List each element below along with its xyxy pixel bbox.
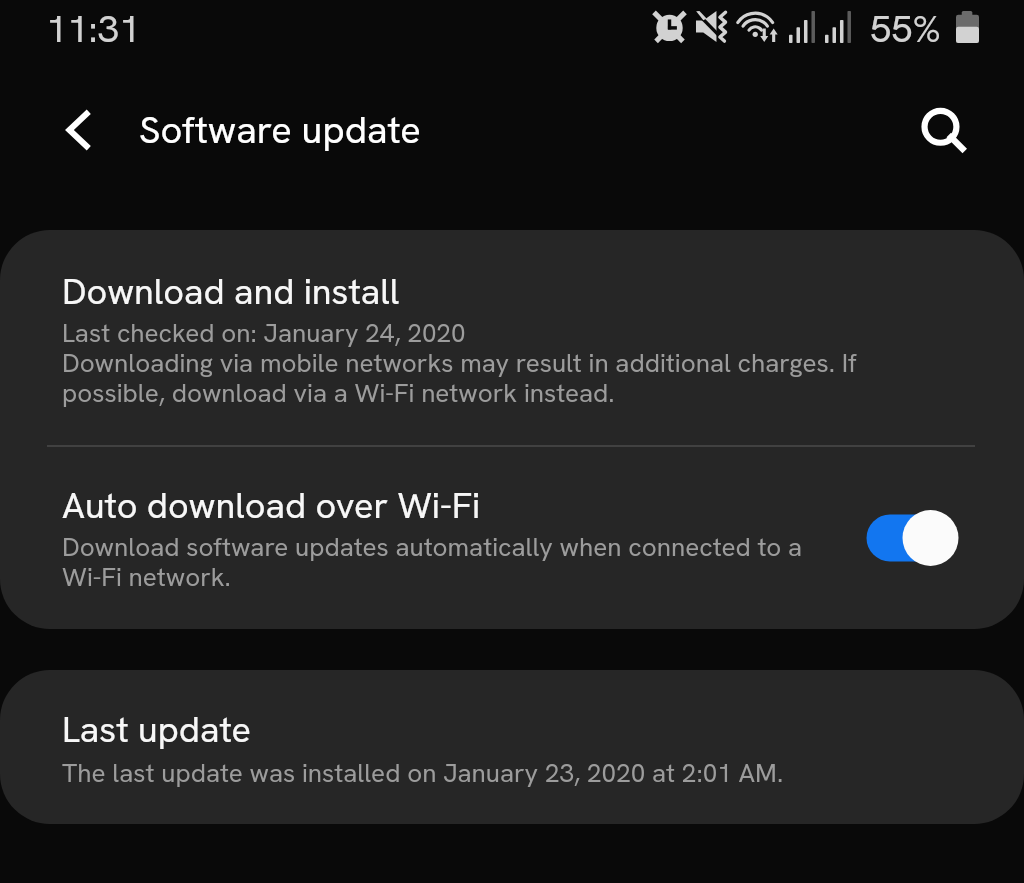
staticText: Download and install: [62, 268, 400, 315]
button[interactable]: Download and install: [0, 230, 1024, 446]
staticText: Download software updates automatically …: [62, 530, 822, 594]
button[interactable]: Auto download over Wi-Fi: [863, 507, 961, 569]
button[interactable]: Auto download over Wi-Fi: [0, 447, 1024, 629]
staticText: 11:31: [46, 4, 141, 54]
button[interactable]: Back: [42, 94, 114, 166]
staticText: Software update: [139, 105, 421, 155]
staticText: The last update was installed on January…: [62, 756, 784, 790]
staticText: Last update: [62, 706, 251, 753]
staticText: 55%: [870, 4, 941, 54]
staticText: Last checked on: January 24, 2020 Downlo…: [62, 316, 932, 410]
button[interactable]: Software update: [0, 94, 282, 166]
button[interactable]: Last update: [0, 670, 1024, 824]
staticText: Auto download over Wi-Fi: [62, 482, 481, 529]
button[interactable]: Search: [907, 95, 979, 167]
